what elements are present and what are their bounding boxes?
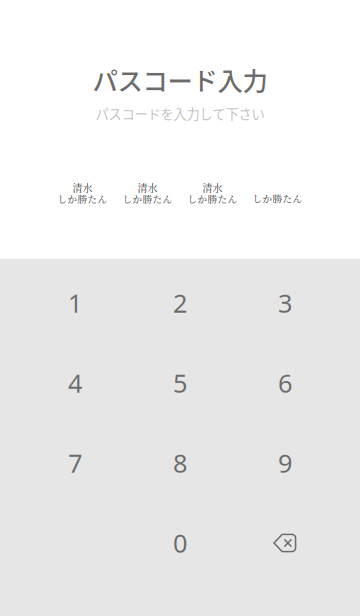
staticText: 6: [278, 366, 292, 400]
staticText: 1: [68, 286, 82, 320]
button[interactable]: 6: [232, 343, 337, 423]
staticText: 8: [173, 446, 187, 480]
staticText: 清水: [202, 180, 222, 195]
staticText: 5: [173, 366, 187, 400]
staticText: しか勝たん: [252, 191, 302, 205]
staticText: 9: [278, 446, 292, 480]
button[interactable]: 1: [22, 263, 127, 343]
staticText: パスコードを入力して下さい: [95, 104, 264, 123]
staticText: 4: [68, 366, 82, 400]
staticText: 7: [68, 446, 82, 480]
staticText: しか勝たん: [187, 192, 237, 206]
staticText: 清水: [72, 180, 92, 195]
button[interactable]: Delete: [232, 503, 337, 583]
staticText: 2: [173, 286, 187, 320]
button[interactable]: 9: [232, 423, 337, 503]
staticText: 清水: [137, 180, 157, 195]
button[interactable]: 3: [232, 263, 337, 343]
button[interactable]: 2: [127, 263, 232, 343]
staticText: パスコード入力: [92, 61, 267, 98]
button[interactable]: 7: [22, 423, 127, 503]
button[interactable]: 0: [127, 503, 232, 583]
button[interactable]: 8: [127, 423, 232, 503]
staticText: 0: [173, 526, 187, 560]
button[interactable]: 4: [22, 343, 127, 423]
button[interactable]: 5: [127, 343, 232, 423]
staticText: しか勝たん: [122, 192, 172, 206]
staticText: 3: [278, 286, 292, 320]
staticText: しか勝たん: [57, 192, 107, 206]
